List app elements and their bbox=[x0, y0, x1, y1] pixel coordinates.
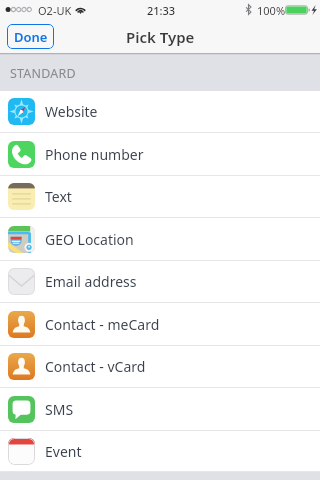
button[interactable]: Website bbox=[0, 91, 320, 133]
staticText: Event bbox=[45, 442, 82, 461]
staticText: SMS bbox=[45, 400, 74, 419]
button[interactable]: GEO Location bbox=[0, 218, 320, 261]
staticText: Done bbox=[14, 28, 48, 46]
button[interactable]: Contact - meCard bbox=[0, 303, 320, 346]
staticText: STANDARD bbox=[10, 65, 76, 82]
button[interactable]: Text bbox=[0, 176, 320, 218]
staticText: Text bbox=[45, 187, 72, 206]
staticText: 21:33 bbox=[147, 3, 176, 18]
button[interactable]: Event bbox=[0, 431, 320, 472]
staticText: Pick Type bbox=[126, 27, 195, 47]
button[interactable]: Contact - vCard bbox=[0, 346, 320, 388]
staticText: 100% bbox=[257, 3, 286, 18]
button[interactable]: Email address bbox=[0, 261, 320, 303]
staticText: Email address bbox=[45, 272, 137, 291]
staticText: O2-UK bbox=[38, 3, 72, 18]
button[interactable]: Phone number bbox=[0, 133, 320, 176]
staticText: Phone number bbox=[45, 145, 144, 164]
button[interactable]: SMS bbox=[0, 388, 320, 431]
button[interactable]: Done bbox=[7, 24, 54, 49]
staticText: GEO Location bbox=[45, 230, 134, 249]
staticText: Contact - vCard bbox=[45, 357, 146, 376]
staticText: Contact - meCard bbox=[45, 315, 160, 334]
staticText: Website bbox=[45, 102, 98, 121]
